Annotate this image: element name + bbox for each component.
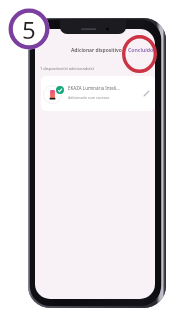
button[interactable]: EKAZA Luminária Inteli... xyxy=(41,76,155,111)
staticText: Adicionar dispositivo xyxy=(71,47,122,54)
staticText: 5 xyxy=(22,13,36,46)
staticText: Adicionado com sucesso xyxy=(68,95,110,100)
staticText: EKAZA Luminária Inteli... xyxy=(68,85,120,91)
button[interactable]: Editar xyxy=(142,89,151,98)
staticText: 1 dispositivo(s) adicionado(s) xyxy=(40,66,94,71)
button[interactable]: Concluído xyxy=(124,42,155,57)
staticText: Concluído xyxy=(128,46,154,53)
